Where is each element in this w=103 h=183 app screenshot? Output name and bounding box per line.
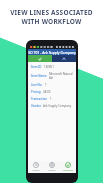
- button[interactable]: Transaction: [28, 96, 76, 103]
- staticText: VIEW LINES ASSOCIATED WITH WORKFLOW: [6, 8, 97, 26]
- button[interactable]: Line No.: [28, 82, 76, 89]
- button[interactable]: History: [28, 161, 44, 173]
- staticText: Ark Supply Company: [43, 104, 72, 108]
- staticText: 1: [45, 83, 47, 87]
- button[interactable]: Details: [44, 161, 60, 173]
- button[interactable]: Item Name: [28, 71, 76, 82]
- staticText: Item Name: [31, 74, 47, 78]
- button[interactable]: Pricing: [28, 89, 76, 96]
- staticText: Pricing: [31, 90, 41, 94]
- button[interactable]: Vendor: [28, 103, 76, 110]
- staticText: SO 701 - Ark Supply Company: [28, 50, 76, 55]
- staticText: History: [32, 169, 40, 172]
- staticText: 48.00: [43, 90, 51, 94]
- staticText: Item ID: [31, 65, 42, 69]
- staticText: Details: [48, 169, 56, 172]
- staticText: Minecraft Natural Ale: [49, 72, 74, 80]
- button[interactable]: Item ID: [28, 64, 76, 71]
- staticText: Approved: [63, 169, 73, 172]
- button[interactable]: Lines: [52, 55, 76, 62]
- staticText: Line No.: [31, 83, 43, 87]
- staticText: 1: [50, 97, 52, 101]
- button[interactable]: Approved: [60, 161, 76, 173]
- staticText: Vendor: [31, 104, 41, 108]
- staticText: Transaction: [31, 97, 48, 101]
- button[interactable]: Approve: [28, 55, 52, 62]
- staticText: 140851: [44, 65, 54, 69]
- button[interactable]: SO 701 - Ark Supply Company: [28, 49, 76, 55]
